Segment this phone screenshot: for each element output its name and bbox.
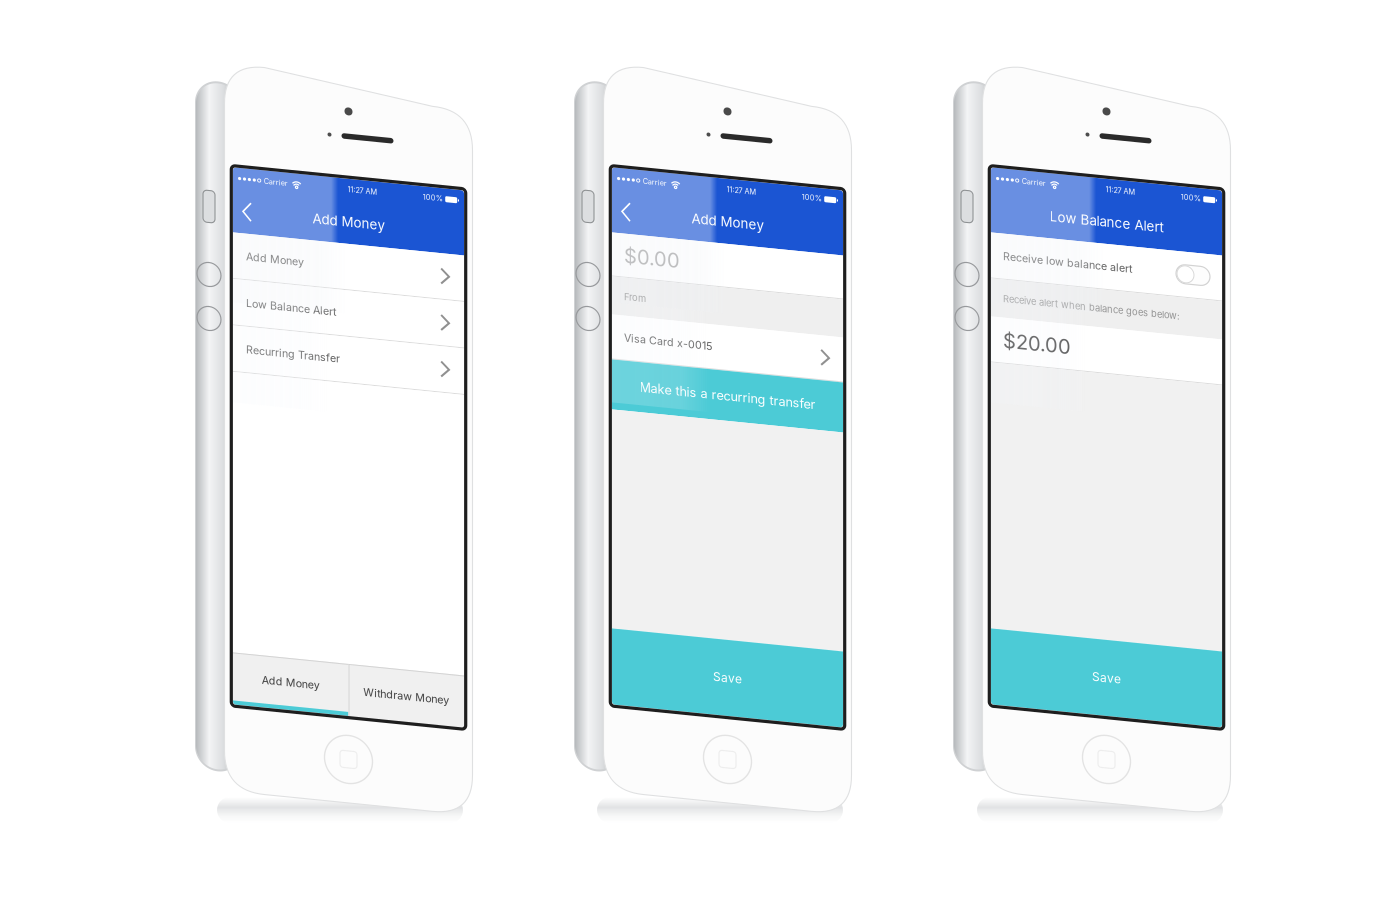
button[interactable]: Withdraw Money — [348, 656, 464, 708]
staticText: Add Money — [246, 253, 304, 266]
staticText: Carrier — [643, 178, 667, 186]
staticText: 100% — [423, 178, 443, 186]
staticText: 100% — [802, 178, 822, 186]
staticText: Low Balance Alert — [1049, 206, 1163, 222]
staticText: Recurring Transfer — [246, 346, 340, 359]
staticText: Add Money — [691, 206, 763, 222]
button[interactable]: Visa Card x-0015 — [612, 318, 843, 363]
staticText: 11:27 AM — [1105, 178, 1135, 186]
button[interactable]: Make this a recurring transfer — [612, 363, 843, 413]
staticText: Withdraw Money — [363, 676, 449, 689]
staticText: 11:27 AM — [726, 178, 756, 186]
staticText: $20.00 — [1003, 331, 1071, 355]
staticText: Carrier — [264, 178, 288, 186]
button[interactable]: Receive low balance alert — [991, 236, 1222, 282]
staticText: Add Money — [262, 674, 320, 687]
button[interactable]: Recurring Transfer — [233, 329, 464, 376]
staticText: Save — [713, 663, 742, 678]
button[interactable]: Back — [233, 194, 273, 234]
staticText: Save — [1092, 663, 1121, 678]
button[interactable]: Low Balance Alert — [233, 283, 464, 329]
staticText: $0.00 — [624, 246, 680, 270]
staticText: From — [624, 294, 646, 305]
button[interactable]: Add Money — [233, 656, 348, 708]
staticText: Make this a recurring transfer — [639, 381, 815, 396]
staticText: Receive low balance alert — [1003, 252, 1132, 265]
button[interactable]: Back — [612, 194, 652, 234]
staticText: Receive alert when balance goes below: — [1003, 296, 1180, 307]
staticText: Low Balance Alert — [246, 299, 336, 312]
button[interactable]: Save — [612, 632, 843, 708]
staticText: 11:27 AM — [347, 178, 377, 186]
staticText: Add Money — [312, 206, 384, 222]
button[interactable]: Save — [991, 632, 1222, 708]
staticText: Carrier — [1022, 178, 1046, 186]
staticText: Visa Card x-0015 — [624, 334, 712, 347]
staticText: 100% — [1181, 178, 1201, 186]
button[interactable]: Add Money — [233, 236, 464, 283]
